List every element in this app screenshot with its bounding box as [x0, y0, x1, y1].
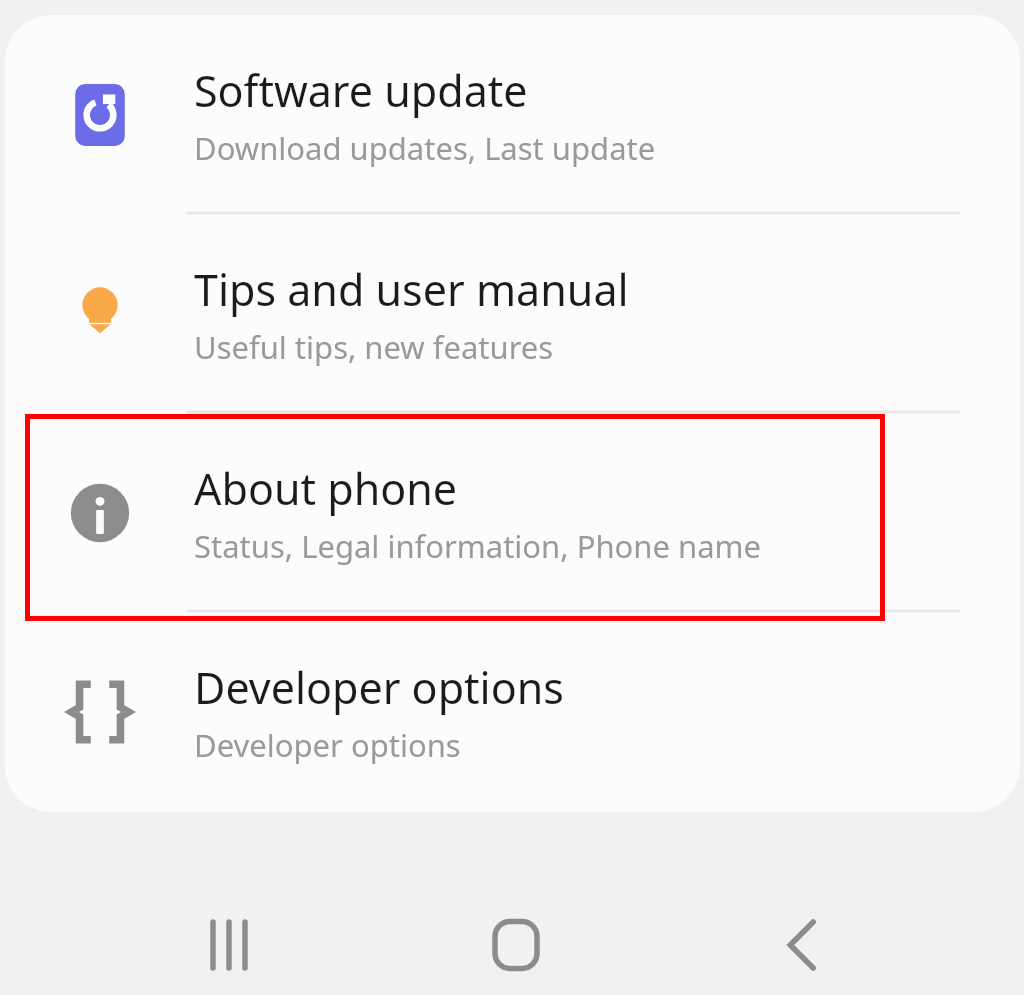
button[interactable]: Developer options — [5, 612, 1020, 811]
staticText: Software update — [194, 61, 528, 120]
staticText: Status, Legal information, Phone name — [194, 525, 762, 567]
button[interactable]: Recent apps — [189, 905, 269, 985]
staticText: Download updates, Last update — [194, 127, 656, 169]
button[interactable]: About phone — [5, 413, 1020, 612]
button[interactable]: Home — [476, 905, 556, 985]
staticText: Developer options — [194, 724, 461, 766]
staticText: About phone — [194, 459, 458, 518]
staticText: Tips and user manual — [194, 260, 629, 319]
button[interactable]: Back — [763, 905, 843, 985]
staticText: Useful tips, new features — [194, 326, 554, 368]
staticText: Developer options — [194, 658, 564, 717]
button[interactable]: Software update — [5, 15, 1020, 214]
button[interactable]: Tips and user manual — [5, 214, 1020, 413]
